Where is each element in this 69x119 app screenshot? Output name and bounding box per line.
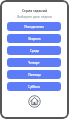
staticText: Суббота (28, 85, 40, 89)
staticText: Пятница (28, 73, 41, 77)
button[interactable]: Суббота (7, 82, 61, 91)
button[interactable]: Четверг (7, 58, 61, 67)
staticText: Выберите день недели (0, 15, 69, 19)
button[interactable]: Home (28, 95, 41, 108)
staticText: Понедельник (24, 25, 44, 29)
staticText: Четверг (28, 61, 40, 65)
staticText: Среда (30, 49, 39, 53)
button[interactable]: Пятница (7, 70, 61, 79)
staticText: Серия заданий (0, 9, 69, 13)
button[interactable]: Понедельник (7, 22, 61, 31)
staticText: Вторник (28, 37, 41, 41)
button[interactable]: Вторник (7, 34, 61, 43)
button[interactable]: Среда (7, 46, 61, 55)
